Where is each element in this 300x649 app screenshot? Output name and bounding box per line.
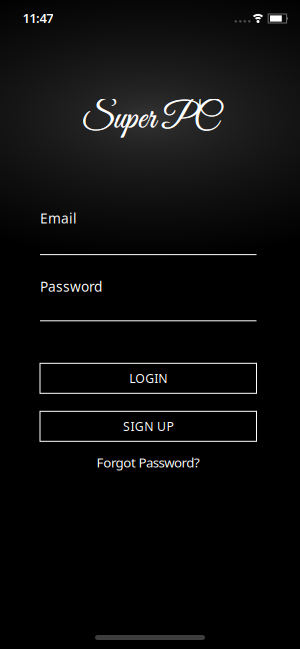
staticText: 11:47: [22, 9, 53, 27]
staticText: Forgot Password?: [96, 453, 200, 471]
button[interactable]: Forgot Password?: [40, 453, 256, 471]
staticText: Password: [40, 277, 102, 296]
button[interactable]: Email: [40, 209, 256, 255]
staticText: LOGIN: [129, 370, 167, 387]
button[interactable]: LOGIN: [40, 363, 256, 393]
button[interactable]: Password: [40, 277, 256, 321]
staticText: SIGN UP: [123, 418, 173, 435]
staticText: Super PC: [82, 98, 219, 141]
staticText: Email: [40, 209, 77, 228]
button[interactable]: SIGN UP: [40, 411, 256, 441]
staticText: Super PC: [81, 98, 218, 141]
staticText: Super PC: [81, 98, 218, 142]
